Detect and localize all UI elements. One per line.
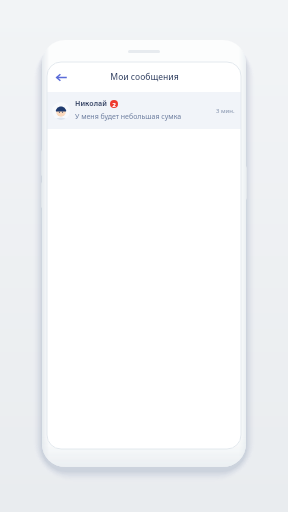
- staticText: У меня будет небольшая сумка: [75, 112, 182, 122]
- staticText: 2: [112, 101, 116, 108]
- staticText: Николай: [75, 99, 107, 109]
- button[interactable]: Back: [49, 65, 73, 89]
- button[interactable]: Николай: [47, 92, 241, 129]
- staticText: Мои сообщения: [110, 71, 179, 83]
- staticText: 3 мин.: [216, 107, 235, 115]
